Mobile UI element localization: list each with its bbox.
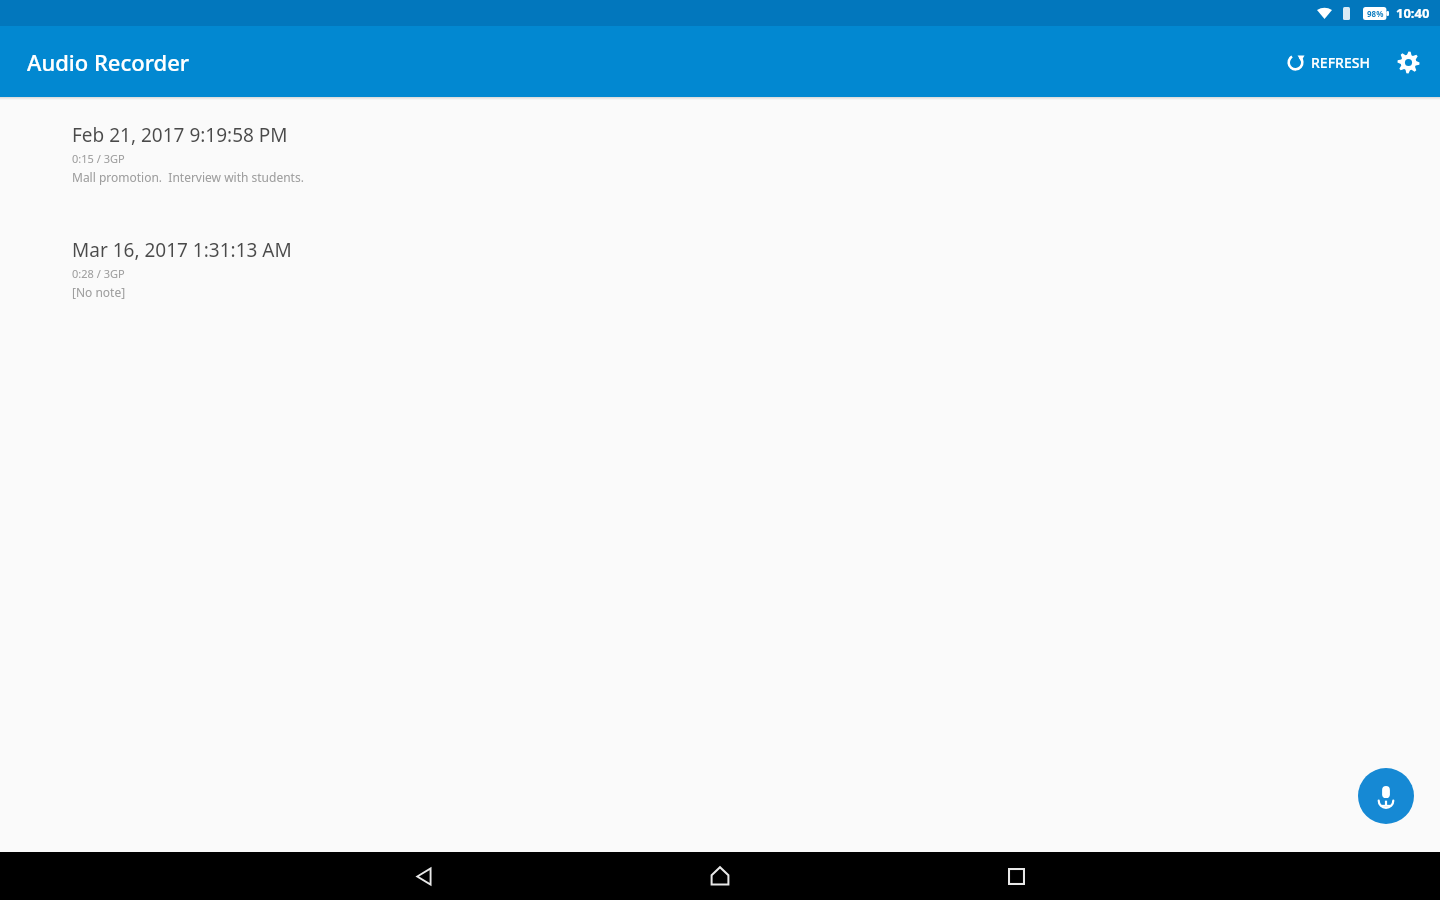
staticText: Feb 21, 2017 9:19:58 PM [72,122,288,148]
button[interactable]: Back [400,852,448,900]
staticText: 0:28 / 3GP [72,266,125,281]
staticText: Mar 16, 2017 1:31:13 AM [72,237,292,263]
staticText: [No note] [72,284,126,300]
staticText: 0:15 / 3GP [72,151,125,166]
staticText: 10:40 [1396,4,1430,22]
button[interactable]: Recents [992,852,1040,900]
staticText: Mall promotion. Interview with students. [72,169,304,185]
button[interactable]: Feb 21, 2017 9:19:58 PM [0,114,1440,229]
staticText: REFRESH [1311,53,1370,72]
button[interactable]: Home [696,852,744,900]
staticText: 98% [1367,8,1384,19]
staticText: Audio Recorder [27,47,190,77]
button[interactable]: REFRESH [1278,45,1378,80]
button[interactable]: Mar 16, 2017 1:31:13 AM [0,229,1440,344]
button[interactable]: Settings [1386,40,1430,84]
button[interactable]: Record [1358,768,1414,824]
